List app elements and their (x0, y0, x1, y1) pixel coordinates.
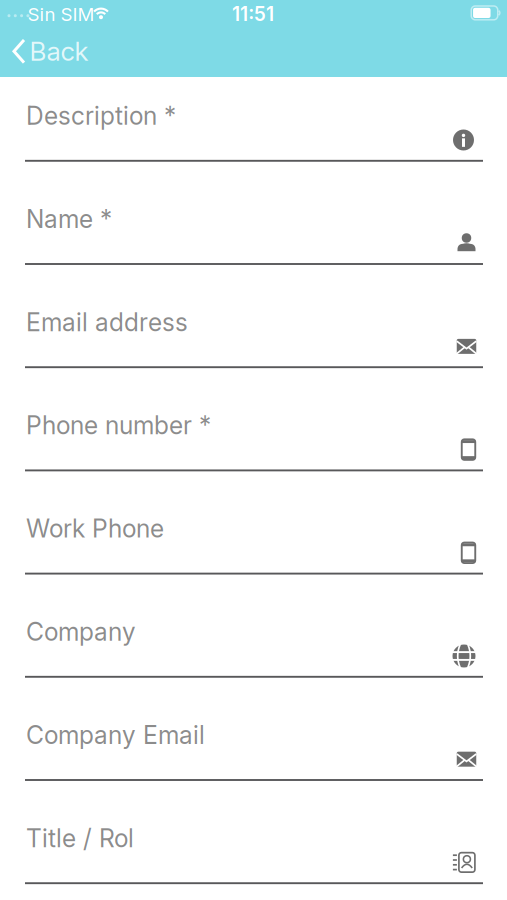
button[interactable]: Back (0, 0, 110, 77)
button[interactable]: Name * (25, 202, 483, 270)
button[interactable]: Phone number * (25, 408, 483, 476)
button[interactable]: Description * (25, 99, 483, 167)
staticText: Email address (26, 307, 188, 337)
staticText: Phone number * (26, 410, 211, 440)
staticText: 11:51 (232, 2, 274, 26)
staticText: Company (26, 617, 136, 647)
staticText: Description * (26, 101, 176, 131)
staticText: Sin SIM (27, 3, 94, 26)
button[interactable]: Work Phone (25, 512, 483, 580)
button[interactable]: Email address (25, 305, 483, 373)
staticText: Work Phone (26, 514, 164, 543)
staticText: Back (29, 36, 88, 67)
button[interactable]: Company Email (25, 718, 483, 786)
button[interactable]: Title / Rol (25, 821, 483, 889)
staticText: Title / Rol (26, 823, 134, 853)
staticText: Name * (26, 204, 112, 234)
button[interactable]: Company (25, 615, 483, 683)
staticText: Company Email (26, 720, 205, 750)
